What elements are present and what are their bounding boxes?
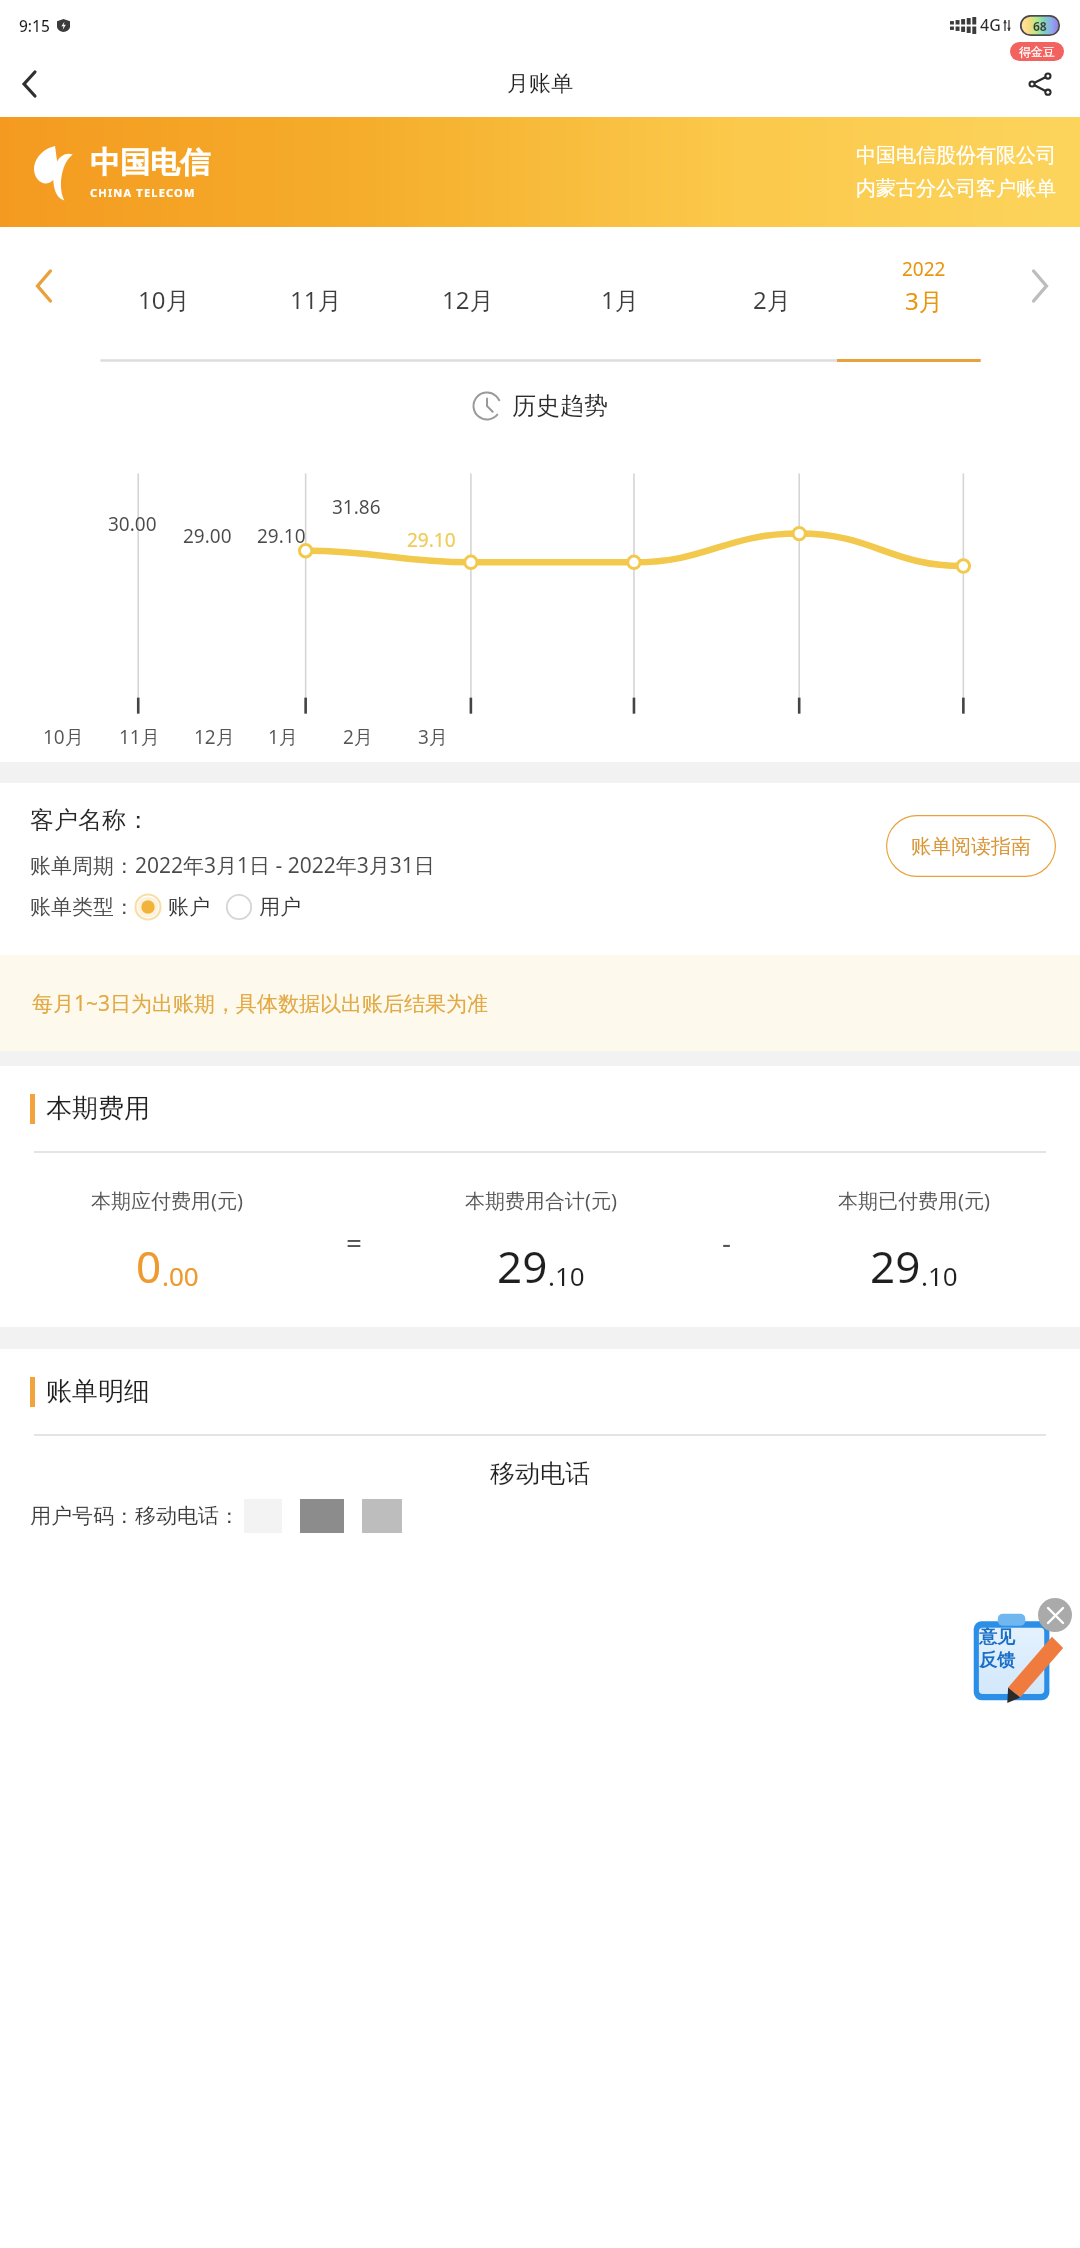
staticText: 用户号码：移动电话： — [30, 1503, 240, 1529]
staticText: 本期应付费用(元) — [91, 1187, 243, 1214]
staticText: 本期费用 — [46, 1092, 150, 1125]
staticText: 31.86 — [332, 494, 381, 520]
staticText: 账单明细 — [46, 1375, 150, 1408]
staticText: 29 — [870, 1236, 921, 1296]
staticText: 得金豆 — [1019, 44, 1055, 59]
staticText: 账单类型： — [30, 894, 135, 920]
button[interactable]: 2022 — [848, 243, 1000, 329]
staticText: - — [722, 1223, 732, 1261]
button[interactable]: 10月 — [88, 243, 240, 329]
button[interactable]: Share — [1014, 58, 1066, 110]
staticText: 3月 — [905, 284, 943, 317]
button[interactable]: Back — [0, 55, 58, 113]
staticText: 3月 — [418, 724, 448, 750]
staticText: 29.00 — [183, 523, 232, 549]
staticText: 12月 — [194, 724, 235, 750]
staticText: 68 — [1033, 18, 1047, 34]
staticText: 账单周期：2022年3月1日 - 2022年3月31日 — [30, 851, 435, 880]
button[interactable]: 1月 — [544, 243, 696, 329]
staticText: = — [346, 1223, 363, 1261]
button[interactable]: 用户 — [226, 894, 301, 920]
staticText: 内蒙古分公司客户账单 — [856, 176, 1056, 201]
staticText: 历史趋势 — [512, 391, 608, 421]
staticText: 2月 — [753, 283, 791, 316]
staticText: 11月 — [119, 724, 160, 750]
staticText: 移动电话 — [490, 1458, 590, 1489]
staticText: 中国电信 — [90, 144, 210, 182]
staticText: 客户名称： — [30, 805, 150, 835]
button[interactable]: 账户 — [135, 894, 210, 920]
staticText: 0 — [136, 1236, 162, 1296]
button[interactable]: Previous — [0, 243, 88, 329]
staticText: 2月 — [343, 724, 373, 750]
staticText: 每月1~3日为出账期，具体数据以出账后结果为准 — [32, 989, 489, 1018]
staticText: 11月 — [290, 283, 342, 316]
staticText: 月账单 — [507, 70, 573, 98]
staticText: 10月 — [138, 283, 190, 316]
staticText: 本期费用合计(元) — [465, 1187, 617, 1214]
staticText: 4G — [980, 14, 1001, 36]
staticText: 10月 — [43, 724, 84, 750]
staticText: 本期已付费用(元) — [838, 1187, 990, 1214]
button[interactable]: 账单阅读指南 — [886, 815, 1056, 877]
staticText: 意见 — [979, 1626, 1015, 1649]
staticText: .10 — [921, 1258, 958, 1293]
staticText: 2022 — [902, 256, 946, 282]
staticText: .10 — [548, 1258, 585, 1293]
button[interactable]: Close — [1038, 1598, 1072, 1632]
button[interactable]: Feedback — [972, 1612, 1058, 1704]
button[interactable]: 得金豆 — [1010, 42, 1064, 61]
staticText: 1月 — [601, 283, 639, 316]
staticText: .00 — [162, 1258, 199, 1293]
staticText: 30.00 — [108, 511, 157, 537]
staticText: 账户 — [168, 894, 210, 920]
staticText: 12月 — [442, 283, 494, 316]
staticText: 1月 — [268, 724, 298, 750]
staticText: 账单阅读指南 — [911, 834, 1031, 859]
staticText: CHINA TELECOM — [90, 185, 196, 200]
staticText: 中国电信股份有限公司 — [856, 143, 1056, 168]
staticText: 反馈 — [979, 1649, 1015, 1672]
staticText: 29.10 — [407, 527, 456, 553]
button[interactable]: Next — [1000, 243, 1080, 329]
staticText: 9:15 — [19, 15, 50, 36]
staticText: 29.10 — [257, 523, 306, 549]
staticText: 用户 — [259, 894, 301, 920]
button[interactable]: 11月 — [240, 243, 392, 329]
button[interactable]: 2月 — [696, 243, 848, 329]
staticText: 29 — [497, 1236, 548, 1296]
button[interactable]: 12月 — [392, 243, 544, 329]
